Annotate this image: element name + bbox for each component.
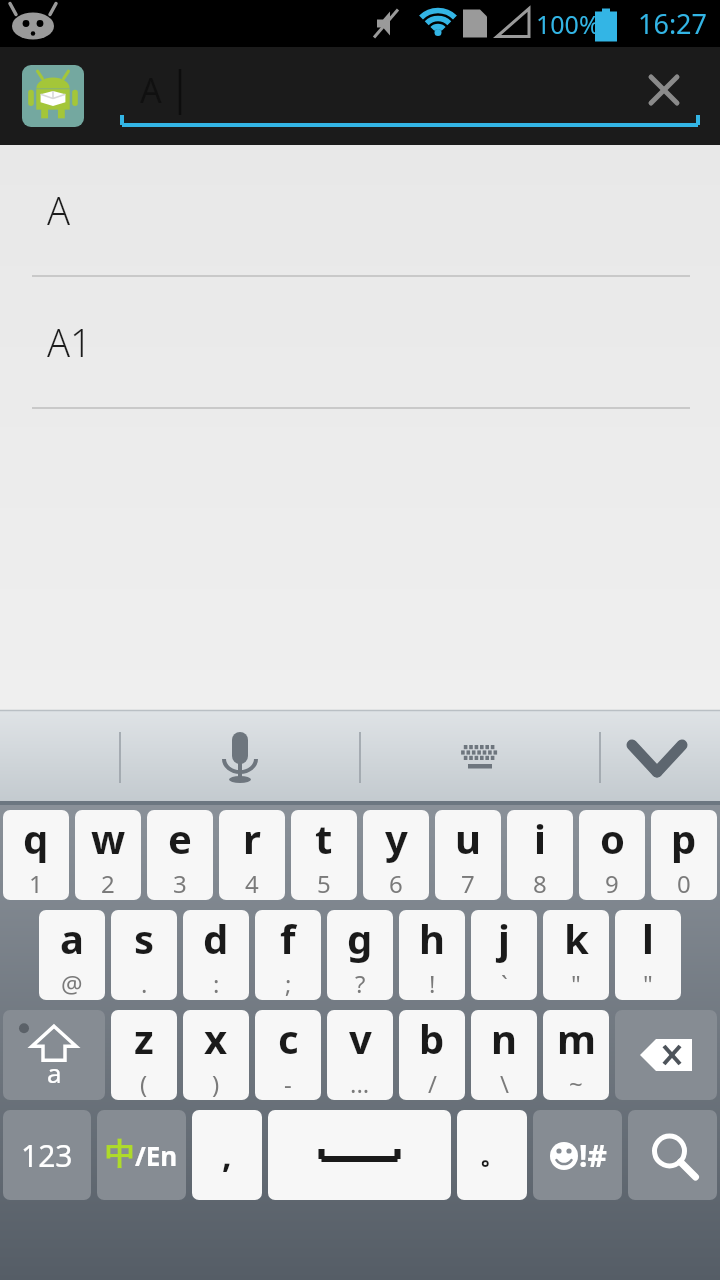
staticText: k (564, 911, 589, 965)
staticText: t (315, 811, 333, 865)
button[interactable]: App icon (22, 65, 84, 127)
staticText: d (203, 911, 229, 965)
button[interactable]: A1 (0, 277, 720, 407)
button[interactable]: i (507, 810, 573, 900)
staticText: n (491, 1011, 517, 1065)
staticText: 5 (317, 867, 331, 900)
staticText: " (571, 967, 581, 1000)
button[interactable]: A (0, 145, 720, 275)
button[interactable]: d (183, 910, 249, 1000)
button[interactable]: b (399, 1010, 465, 1100)
staticText: x (204, 1011, 228, 1065)
button[interactable]: a (39, 910, 105, 1000)
button[interactable]: z (111, 1010, 177, 1100)
button[interactable]: l (615, 910, 681, 1000)
button[interactable]: s (111, 910, 177, 1000)
button[interactable]: , (192, 1110, 262, 1200)
staticText: a (47, 1055, 62, 1090)
button[interactable]: Backspace (615, 1010, 717, 1100)
staticText: w (91, 811, 126, 865)
staticText: m (557, 1011, 596, 1065)
staticText: 6 (389, 867, 403, 900)
staticText: ! (429, 967, 436, 1000)
button[interactable]: 。 (457, 1110, 527, 1200)
staticText: ... (350, 1067, 370, 1100)
staticText: ~ (569, 1067, 583, 1100)
button[interactable]: f (255, 910, 321, 1000)
staticText: 7 (461, 867, 475, 900)
staticText: 16:27 (638, 5, 708, 42)
staticText: ) (212, 1067, 220, 1100)
staticText: e (168, 811, 192, 865)
staticText: /En (135, 1138, 178, 1173)
button[interactable]: y (363, 810, 429, 900)
staticText: o (600, 811, 625, 865)
button[interactable]: Search (628, 1110, 717, 1200)
button[interactable]: 中 (97, 1110, 186, 1200)
button[interactable]: t (291, 810, 357, 900)
staticText: u (455, 811, 481, 865)
staticText: i (534, 811, 546, 865)
button[interactable]: n (471, 1010, 537, 1100)
staticText: / (428, 1067, 437, 1100)
staticText: l (642, 911, 654, 965)
button[interactable]: h (399, 910, 465, 1000)
button[interactable]: q (3, 810, 69, 900)
staticText: f (280, 911, 296, 965)
button[interactable]: g (327, 910, 393, 1000)
staticText: 1 (29, 867, 43, 900)
staticText: !# (579, 1135, 607, 1176)
staticText: 4 (245, 867, 259, 900)
button[interactable]: j (471, 910, 537, 1000)
staticText: h (419, 911, 445, 965)
button[interactable]: x (183, 1010, 249, 1100)
staticText: 3 (173, 867, 187, 900)
button[interactable]: Symbols and emoji (533, 1110, 622, 1200)
staticText: q (23, 811, 49, 865)
button[interactable]: 123 (3, 1110, 91, 1200)
staticText: \ (500, 1067, 509, 1100)
button[interactable]: A (114, 53, 706, 139)
staticText: y (385, 811, 408, 865)
staticText: 8 (533, 867, 547, 900)
staticText: 9 (605, 867, 619, 900)
staticText: A (140, 67, 162, 113)
button[interactable]: Shift (3, 1010, 105, 1100)
staticText: s (134, 911, 155, 965)
staticText: p (671, 811, 697, 865)
staticText: r (243, 811, 261, 865)
button[interactable]: v (327, 1010, 393, 1100)
staticText: ` (501, 967, 508, 1000)
button[interactable]: Clear text (638, 64, 690, 116)
button[interactable]: u (435, 810, 501, 900)
staticText: 。 (479, 1139, 505, 1172)
staticText: ; (285, 967, 292, 1000)
staticText: z (134, 1011, 154, 1065)
button[interactable]: r (219, 810, 285, 900)
staticText: A (47, 184, 71, 236)
staticText: b (419, 1011, 445, 1065)
button[interactable]: k (543, 910, 609, 1000)
staticText: c (278, 1011, 299, 1065)
button[interactable]: p (651, 810, 717, 900)
button[interactable]: e (147, 810, 213, 900)
staticText: . (141, 967, 148, 1000)
staticText: j (498, 911, 510, 965)
button[interactable]: w (75, 810, 141, 900)
button[interactable]: Space (268, 1110, 451, 1200)
staticText: 123 (21, 1135, 73, 1176)
staticText: @ (61, 967, 83, 1000)
button[interactable]: m (543, 1010, 609, 1100)
staticText: A1 (47, 316, 92, 368)
button[interactable]: c (255, 1010, 321, 1100)
staticText: 中 (105, 1136, 135, 1174)
staticText: a (60, 911, 84, 965)
staticText: v (349, 1011, 372, 1065)
button[interactable]: Voice input (200, 718, 280, 798)
button[interactable]: o (579, 810, 645, 900)
staticText: " (643, 967, 653, 1000)
staticText: ( (140, 1067, 148, 1100)
button[interactable]: Switch keyboard (440, 718, 520, 798)
button[interactable]: Hide keyboard (614, 715, 700, 801)
staticText: , (222, 1132, 232, 1178)
